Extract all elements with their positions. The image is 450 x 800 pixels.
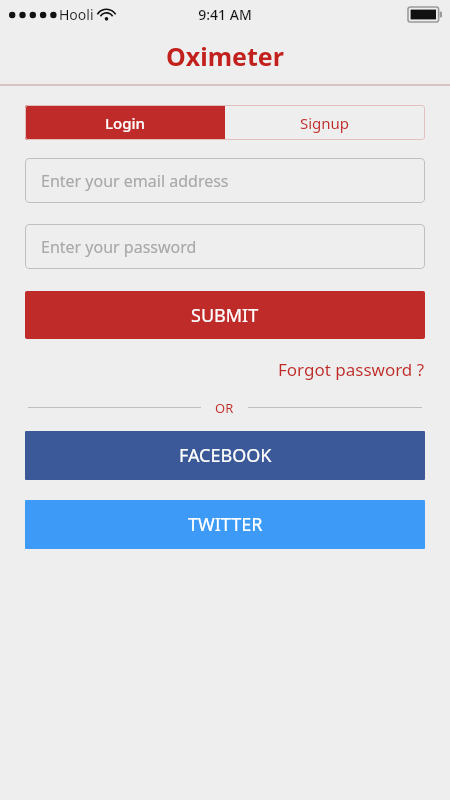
button[interactable]: Enter your password	[25, 224, 425, 269]
staticText: Forgot password ?	[278, 358, 425, 381]
button[interactable]: Forgot password ?	[278, 358, 425, 381]
button[interactable]: TWITTER	[25, 500, 425, 549]
staticText: Enter your email address	[41, 170, 229, 192]
staticText: Hooli	[59, 5, 94, 24]
staticText: 9:41 AM	[198, 5, 252, 24]
staticText: Login	[105, 113, 145, 133]
staticText: Enter your password	[41, 236, 197, 258]
button[interactable]: Signup	[225, 105, 425, 140]
button[interactable]: Login	[25, 105, 225, 140]
staticText: FACEBOOK	[179, 443, 272, 468]
staticText: Oximeter	[166, 39, 284, 73]
button[interactable]: SUBMIT	[25, 291, 425, 339]
staticText: SUBMIT	[191, 303, 259, 328]
staticText: TWITTER	[188, 512, 263, 537]
staticText: OR	[215, 399, 234, 415]
staticText: Signup	[300, 113, 350, 133]
button[interactable]: Enter your email address	[25, 158, 425, 203]
button[interactable]: FACEBOOK	[25, 431, 425, 480]
